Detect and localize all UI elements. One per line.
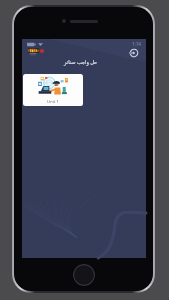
staticText: Unit 1 xyxy=(47,99,59,105)
button[interactable]: Login xyxy=(127,46,141,60)
staticText: حل واجب سناتر xyxy=(64,59,98,66)
button[interactable]: Unit 1 xyxy=(23,74,83,106)
staticText: 1:14 xyxy=(132,41,141,47)
button[interactable]: App logo xyxy=(27,47,47,59)
